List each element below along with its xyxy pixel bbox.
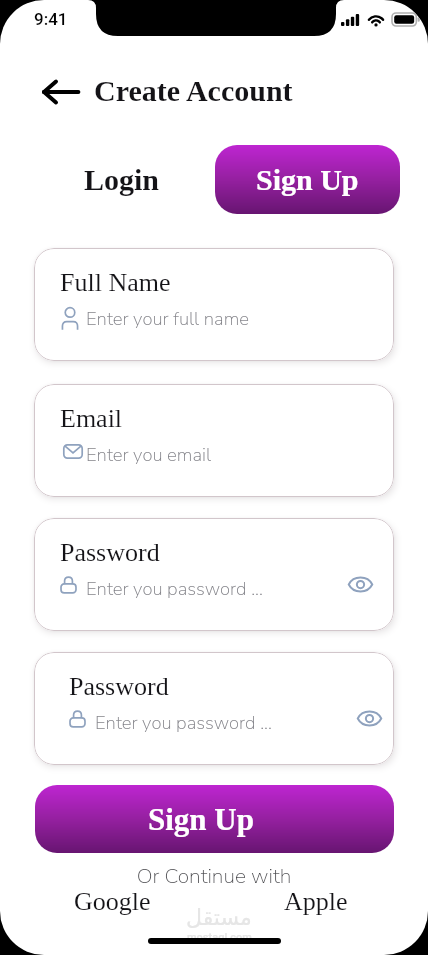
- staticText: mostaql.com: [187, 931, 252, 944]
- staticText: Enter your full name: [86, 306, 249, 331]
- button[interactable]: Show password: [340, 564, 380, 604]
- staticText: Password: [69, 672, 169, 701]
- staticText: Google: [74, 887, 151, 916]
- staticText: مستقل: [186, 905, 252, 931]
- button[interactable]: Login: [74, 155, 169, 203]
- staticText: Enter you password ...: [95, 710, 272, 735]
- button[interactable]: Email: [34, 384, 394, 497]
- staticText: Login: [84, 163, 160, 196]
- staticText: Apple: [284, 887, 348, 916]
- staticText: Create Account: [94, 74, 293, 107]
- button[interactable]: Apple: [284, 887, 348, 916]
- staticText: Full Name: [60, 268, 171, 297]
- button[interactable]: Sign Up: [215, 145, 400, 214]
- staticText: Sign Up: [148, 802, 254, 836]
- button[interactable]: Show password: [349, 698, 389, 738]
- staticText: Sign Up: [256, 163, 359, 196]
- staticText: Enter you password ...: [86, 576, 263, 601]
- staticText: Email: [60, 404, 123, 433]
- button[interactable]: Password: [34, 518, 394, 631]
- button[interactable]: Google: [74, 887, 151, 916]
- button[interactable]: Full Name: [34, 248, 394, 361]
- staticText: 9:41: [34, 9, 68, 29]
- button[interactable]: Back: [38, 70, 82, 114]
- staticText: Or Continue with: [0, 862, 428, 891]
- staticText: Password: [60, 538, 160, 567]
- staticText: Enter you email: [86, 442, 212, 467]
- button[interactable]: Password: [34, 652, 394, 765]
- button[interactable]: Sign Up: [35, 785, 394, 853]
